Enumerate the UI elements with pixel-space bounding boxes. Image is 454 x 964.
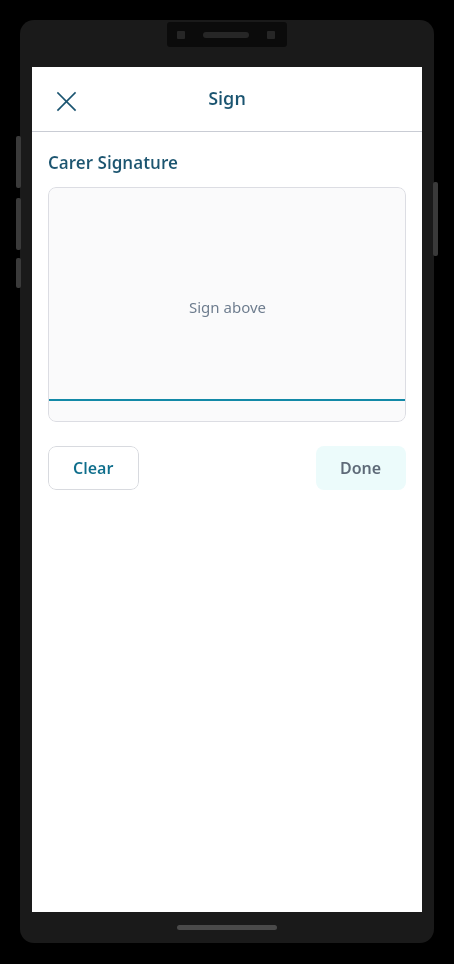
staticText: Carer Signature bbox=[48, 151, 178, 174]
button[interactable]: Clear bbox=[48, 446, 139, 490]
button[interactable]: Done bbox=[316, 446, 406, 490]
button[interactable]: Close bbox=[46, 81, 86, 121]
staticText: Sign bbox=[208, 86, 246, 111]
button[interactable]: Signature pad bbox=[48, 187, 406, 422]
staticText: Sign above bbox=[189, 297, 266, 317]
staticText: Done bbox=[340, 457, 382, 479]
staticText: Clear bbox=[73, 457, 114, 479]
